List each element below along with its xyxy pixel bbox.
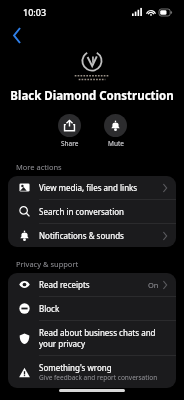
button[interactable]: Mute [102, 113, 129, 149]
button[interactable]: View media, files and links [8, 176, 176, 199]
staticText: Share [61, 139, 79, 148]
staticText: Notifications & sounds [39, 230, 124, 241]
staticText: Give feedback and report conversation [39, 373, 158, 382]
staticText: More actions [16, 162, 62, 172]
staticText: Read receipts [39, 279, 90, 290]
staticText: Mute [108, 139, 124, 148]
staticText: Privacy & support [16, 259, 79, 269]
button[interactable]: Block [8, 297, 176, 320]
staticText: Block [39, 303, 60, 314]
button[interactable]: Search in conversation [8, 200, 176, 223]
button[interactable]: Share [56, 113, 83, 149]
staticText: Search in conversation [39, 206, 125, 217]
button[interactable]: Something's wrong [8, 356, 176, 388]
staticText: Read about business chats and your priva… [39, 327, 156, 349]
staticText: 10:03 [23, 6, 47, 18]
button[interactable]: Back [0, 24, 34, 46]
button[interactable]: Read about business chats and your priva… [8, 321, 176, 355]
staticText: View media, files and links [39, 182, 138, 193]
staticText: Something's wrong [39, 362, 112, 373]
button[interactable]: Notifications & sounds [8, 224, 176, 247]
button[interactable]: Read receipts [8, 273, 176, 296]
staticText: Black Diamond Construction [6, 88, 178, 104]
staticText: On [148, 280, 159, 290]
